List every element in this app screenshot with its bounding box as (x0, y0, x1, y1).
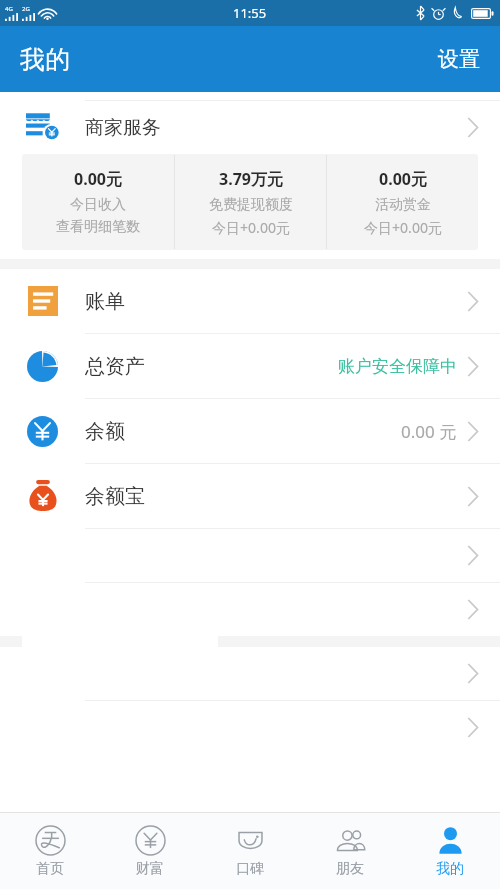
staticText: 今日收入 (70, 196, 126, 214)
staticText: 朋友 (336, 860, 364, 878)
button[interactable]: 账单 (0, 269, 500, 333)
button[interactable]: 总资产 (0, 334, 500, 398)
staticText: 商家服务 (85, 116, 467, 140)
button[interactable]: 商家服务 (0, 101, 500, 154)
button[interactable]: 余额宝 (0, 464, 500, 528)
button[interactable]: 首页 (0, 813, 100, 889)
staticText: 免费提现额度 (209, 196, 293, 214)
staticText: 今日+0.00元 (364, 218, 442, 237)
staticText: 首页 (36, 860, 64, 878)
button[interactable]: 朋友 (300, 813, 400, 889)
button[interactable]: 设置 (430, 42, 500, 76)
staticText: 查看明细笔数 (56, 218, 140, 236)
button[interactable]: 财富 (100, 813, 200, 889)
staticText: 今日+0.00元 (212, 218, 290, 237)
staticText: 4G (5, 5, 13, 13)
staticText: 账户安全保障中 (338, 356, 457, 377)
staticText: 财富 (136, 860, 164, 878)
staticText: 0.00 元 (401, 420, 457, 443)
staticText: 余额宝 (85, 484, 467, 509)
staticText: 余额 (85, 419, 401, 444)
staticText: 11:55 (233, 4, 267, 22)
button[interactable]: 0.00元 (22, 154, 174, 250)
button[interactable]: 口碑 (200, 813, 300, 889)
staticText: 总资产 (85, 354, 338, 379)
staticText: 0.00元 (74, 168, 122, 190)
button[interactable]: 0.00元 (327, 154, 478, 250)
button[interactable]: 我的 (400, 813, 500, 889)
button[interactable]: 余额 (0, 399, 500, 463)
staticText: 3.79万元 (219, 168, 283, 190)
button[interactable]: 我的 (0, 40, 78, 79)
staticText: 2G (22, 5, 30, 13)
staticText: 活动赏金 (375, 196, 431, 214)
staticText: 我的 (436, 860, 464, 878)
staticText: 口碑 (236, 860, 264, 878)
staticText: 0.00元 (379, 168, 427, 190)
staticText: 账单 (85, 289, 467, 314)
button[interactable]: 3.79万元 (175, 154, 326, 250)
